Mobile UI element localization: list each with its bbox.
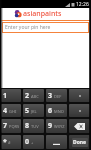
- button[interactable]: Backspace: [69, 119, 90, 133]
- staticText: 8: [25, 121, 30, 131]
- staticText: JKL: [31, 109, 37, 114]
- button[interactable]: Done: [69, 135, 90, 149]
- staticText: 12:26: [76, 1, 89, 8]
- staticText: asianpaints: [23, 9, 62, 19]
- staticText: Done: [73, 139, 87, 146]
- staticText: 3: [48, 91, 53, 101]
- button[interactable]: 7: [1, 119, 21, 133]
- staticText: +: [31, 140, 34, 145]
- button[interactable]: 4: [1, 104, 21, 117]
- button[interactable]: 5: [23, 104, 44, 117]
- button[interactable]: 9: [46, 119, 67, 133]
- button[interactable]: Dot: [69, 89, 90, 102]
- button[interactable]: 2: [23, 89, 44, 102]
- staticText: PQRS: [9, 124, 20, 129]
- button[interactable]: Enter your pin here: [2, 22, 89, 33]
- staticText: 1: [3, 91, 8, 101]
- staticText: MNO: [54, 109, 64, 114]
- button[interactable]: 8: [23, 119, 44, 133]
- button[interactable]: 6: [46, 104, 67, 117]
- button[interactable]: Dot: [69, 104, 90, 117]
- staticText: 2: [25, 91, 30, 101]
- staticText: 4: [3, 106, 8, 116]
- staticText: 5: [25, 106, 30, 116]
- staticText: 9: [48, 121, 53, 131]
- staticText: DEF: [54, 94, 62, 99]
- staticText: GHI: [9, 109, 17, 114]
- staticText: Enter your pin here: [5, 24, 51, 31]
- staticText: 6: [48, 106, 53, 116]
- staticText: ABC: [31, 94, 39, 99]
- staticText: *: [3, 137, 7, 147]
- button[interactable]: 3: [46, 89, 67, 102]
- button[interactable]: 1: [1, 89, 21, 102]
- staticText: #: [8, 140, 11, 145]
- button[interactable]: *: [1, 135, 21, 149]
- button[interactable]: 0: [23, 135, 44, 149]
- button[interactable]: Space: [46, 135, 67, 149]
- staticText: WXYZ: [54, 124, 65, 129]
- staticText: 0: [25, 137, 30, 147]
- staticText: TUV: [31, 124, 39, 129]
- staticText: 7: [3, 121, 8, 131]
